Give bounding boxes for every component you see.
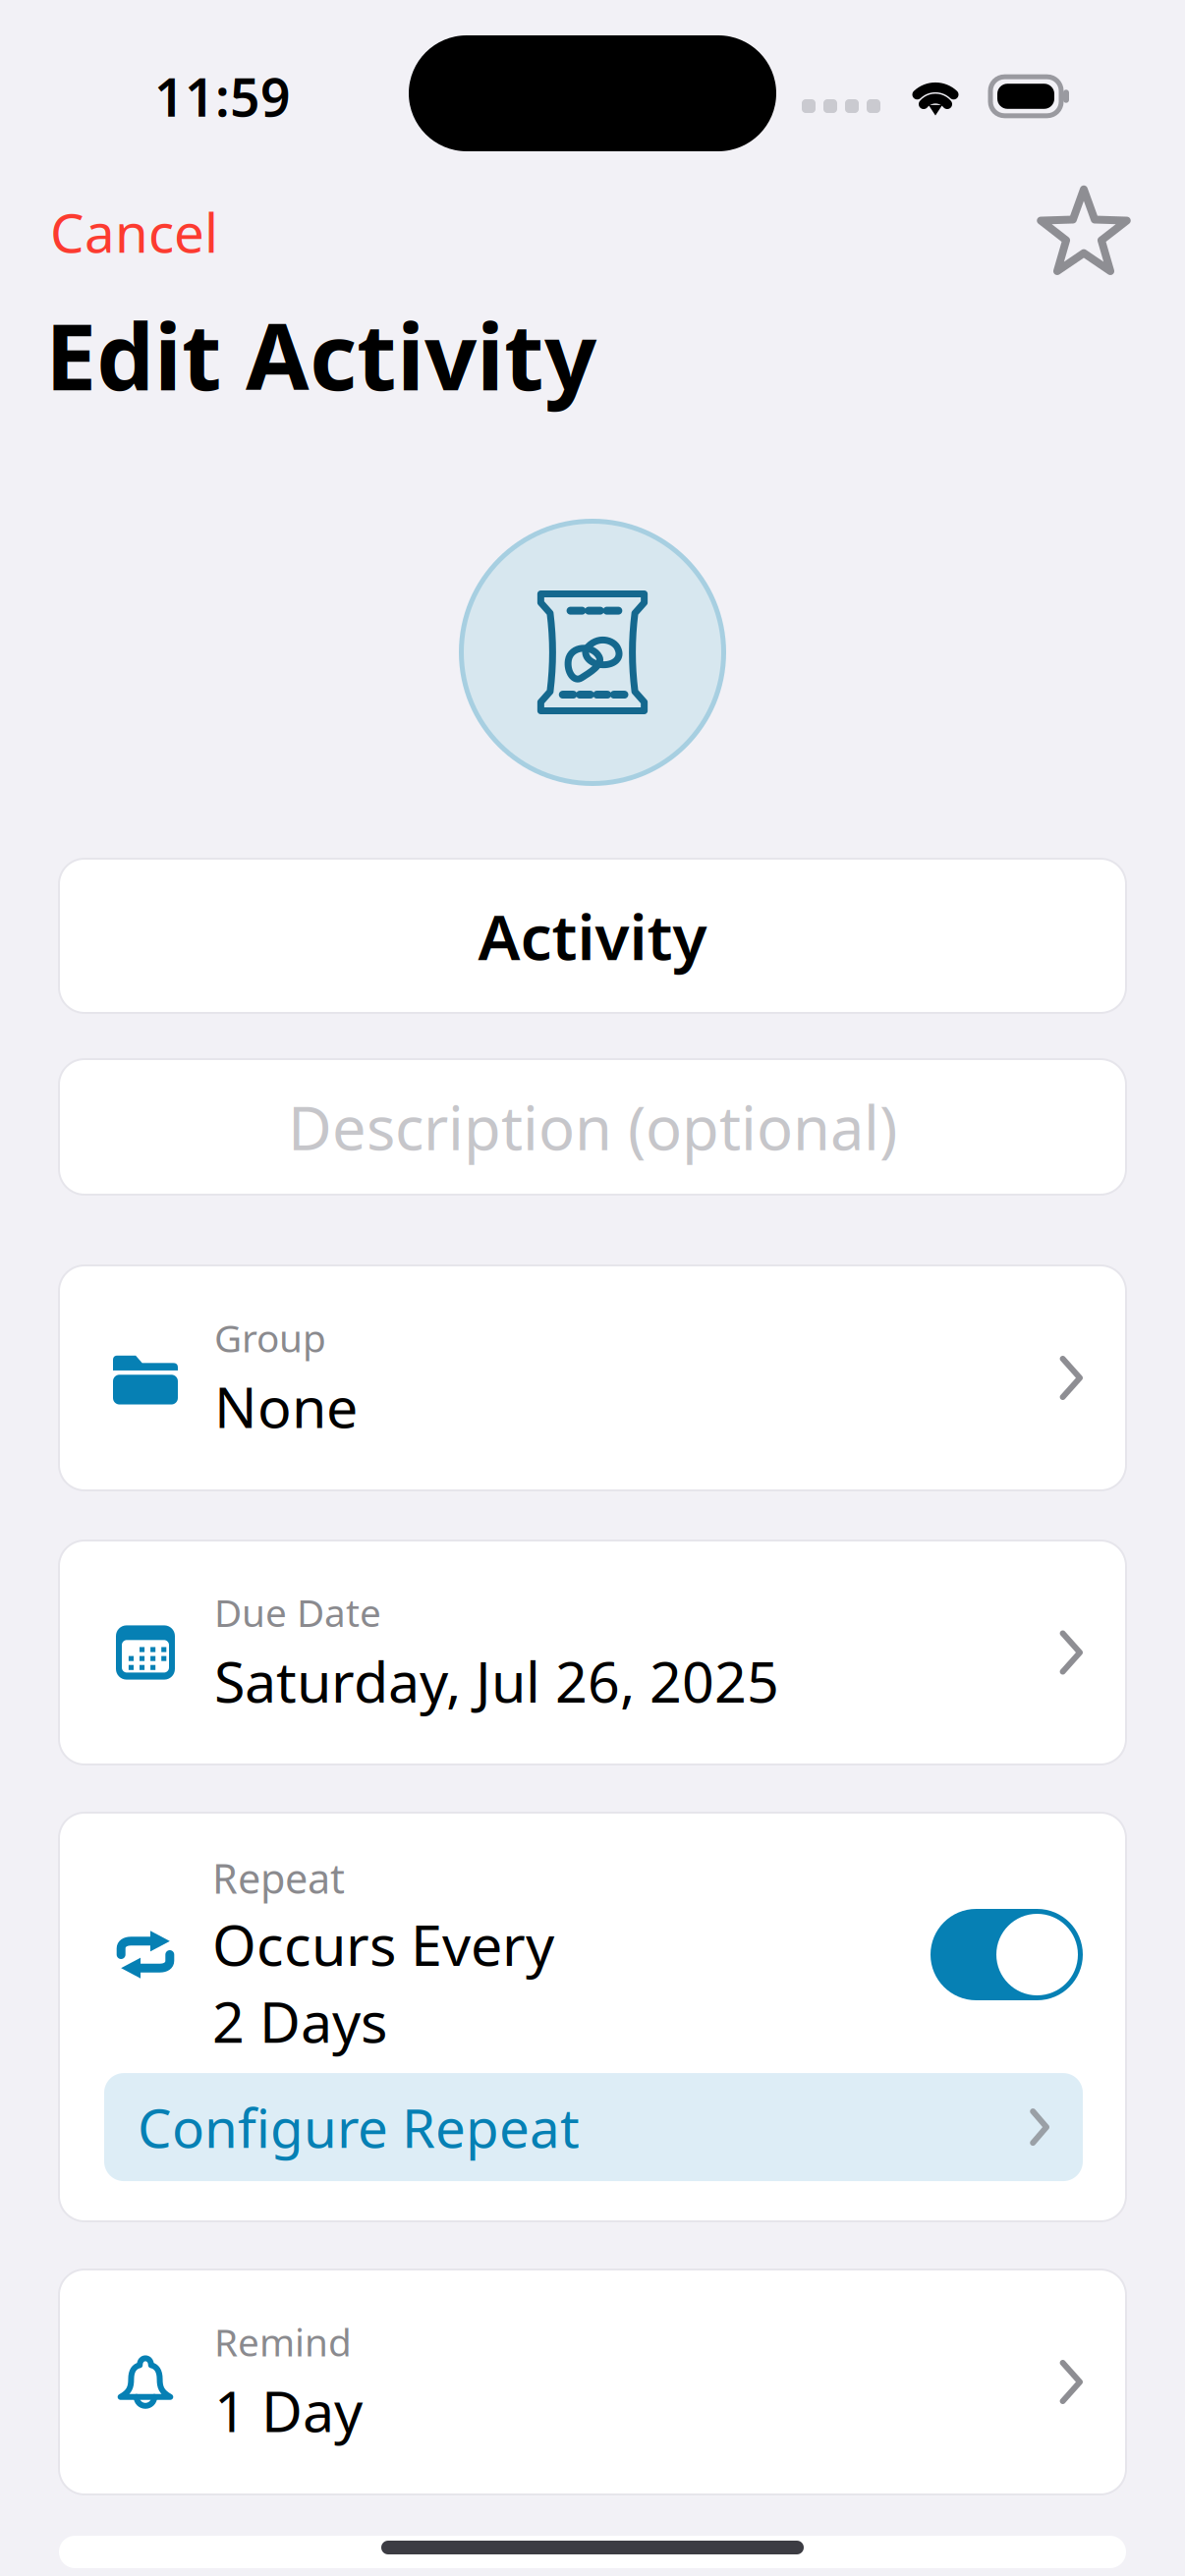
button[interactable]: Favorite bbox=[1039, 187, 1129, 277]
button[interactable]: Activity bbox=[59, 859, 1126, 1013]
button[interactable]: Due Date bbox=[59, 1540, 1126, 1764]
staticText: None bbox=[214, 1369, 358, 1443]
staticText: Remind bbox=[214, 2316, 352, 2367]
button[interactable]: Repeat toggle bbox=[931, 1909, 1083, 2000]
staticText: Cancel bbox=[50, 196, 218, 268]
button[interactable]: Remind bbox=[59, 2269, 1126, 2494]
staticText: Edit Activity bbox=[45, 294, 596, 415]
staticText: Activity bbox=[478, 894, 707, 978]
staticText: Repeat bbox=[212, 1851, 345, 1905]
staticText: 2 Days bbox=[212, 1983, 387, 2058]
button[interactable]: Cancel bbox=[50, 186, 218, 277]
staticText: Occurs Every bbox=[212, 1907, 554, 1982]
staticText: Description (optional) bbox=[288, 1087, 897, 1167]
staticText: Due Date bbox=[214, 1587, 381, 1637]
staticText: Group bbox=[214, 1312, 326, 1363]
staticText: 11:59 bbox=[154, 62, 291, 131]
button[interactable]: Description (optional) bbox=[59, 1059, 1126, 1195]
button[interactable]: Group bbox=[59, 1265, 1126, 1490]
staticText: Configure Repeat bbox=[138, 2091, 580, 2163]
staticText: 1 Day bbox=[214, 2373, 363, 2447]
button[interactable]: Configure Repeat bbox=[104, 2073, 1083, 2181]
staticText: Saturday, Jul 26, 2025 bbox=[214, 1643, 779, 1718]
